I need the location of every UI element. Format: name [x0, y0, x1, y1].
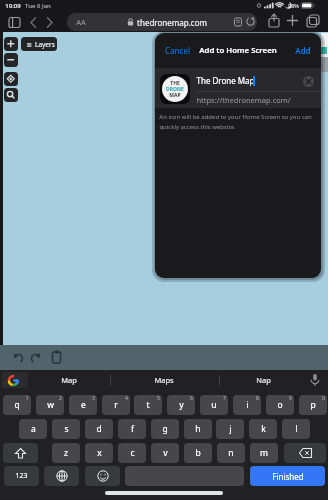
- button[interactable]: [4, 53, 18, 67]
- staticText: y: [179, 399, 184, 411]
- staticText: c: [130, 447, 135, 459]
- button[interactable]: t: [134, 395, 162, 415]
- staticText: v: [163, 447, 168, 459]
- button[interactable]: Map: [28, 372, 109, 388]
- staticText: 19:09: [5, 2, 21, 10]
- staticText: https://thedronemap.com/: [196, 95, 291, 105]
- button[interactable]: [3, 443, 38, 463]
- staticText: THE: [170, 80, 180, 87]
- staticText: 8: [256, 395, 259, 402]
- button[interactable]: h: [184, 419, 212, 439]
- staticText: Maps: [154, 375, 174, 385]
- staticText: The Drone Map: [196, 75, 255, 86]
- button[interactable]: w: [36, 395, 64, 415]
- staticText: 0: [322, 395, 325, 402]
- button[interactable]: m: [250, 443, 278, 463]
- button[interactable]: i: [233, 395, 261, 415]
- staticText: Cancel: [165, 45, 190, 56]
- button[interactable]: [308, 373, 322, 387]
- button[interactable]: k: [249, 419, 277, 439]
- button[interactable]: 123: [4, 466, 39, 486]
- staticText: 5: [157, 395, 160, 402]
- button[interactable]: o: [266, 395, 294, 415]
- button[interactable]: [44, 466, 79, 486]
- button[interactable]: u: [200, 395, 228, 415]
- button[interactable]: z: [52, 443, 80, 463]
- button[interactable]: Add: [289, 43, 311, 57]
- button[interactable]: f: [118, 419, 146, 439]
- staticText: 4: [125, 395, 128, 402]
- button[interactable]: [7, 374, 20, 387]
- staticText: 2: [59, 395, 62, 402]
- button[interactable]: Cancel: [165, 43, 200, 57]
- staticText: An icon will be added to your Home Scree…: [159, 113, 312, 121]
- button[interactable]: [4, 37, 18, 51]
- staticText: AA: [76, 17, 86, 27]
- button[interactable]: j: [216, 419, 244, 439]
- staticText: DRONE: [166, 86, 184, 93]
- staticText: g: [162, 423, 168, 435]
- staticText: Finished: [272, 471, 304, 482]
- button[interactable]: g: [151, 419, 179, 439]
- staticText: 123: [15, 471, 28, 481]
- button[interactable]: e: [69, 395, 97, 415]
- button[interactable]: x: [85, 443, 113, 463]
- button[interactable]: [4, 88, 18, 102]
- staticText: b: [195, 447, 201, 459]
- staticText: 1: [26, 395, 29, 402]
- button[interactable]: [29, 17, 38, 28]
- staticText: MAP: [169, 92, 181, 99]
- staticText: w: [47, 399, 54, 411]
- button[interactable]: a: [19, 419, 47, 439]
- staticText: n: [228, 447, 234, 459]
- button[interactable]: l: [282, 419, 310, 439]
- staticText: h: [195, 423, 201, 435]
- button[interactable]: [303, 76, 314, 87]
- button[interactable]: [284, 443, 326, 463]
- staticText: 6: [190, 395, 193, 402]
- button[interactable]: [306, 14, 320, 28]
- button[interactable]: AA: [67, 13, 257, 31]
- button[interactable]: Finished: [250, 466, 325, 486]
- staticText: u: [211, 399, 217, 411]
- staticText: Add to Home Screen: [199, 45, 277, 56]
- staticText: Add: [295, 45, 311, 56]
- button[interactable]: q: [3, 395, 31, 415]
- button[interactable]: [50, 350, 63, 365]
- button[interactable]: [287, 15, 298, 26]
- staticText: quickly access this website.: [159, 123, 236, 131]
- button[interactable]: [29, 351, 42, 364]
- button[interactable]: s: [52, 419, 80, 439]
- staticText: 3: [92, 395, 95, 402]
- staticText: q: [14, 399, 20, 411]
- button[interactable]: p: [299, 395, 327, 415]
- button[interactable]: [45, 17, 54, 28]
- button[interactable]: [12, 351, 25, 364]
- staticText: f: [131, 423, 134, 435]
- button[interactable]: Maps: [111, 372, 217, 388]
- staticText: 7: [223, 395, 226, 402]
- staticText: i: [246, 399, 249, 411]
- button[interactable]: [8, 16, 21, 29]
- staticText: t: [146, 399, 150, 411]
- button[interactable]: [85, 466, 120, 486]
- staticText: ≡ Layers: [26, 40, 55, 49]
- button[interactable]: c: [118, 443, 146, 463]
- button[interactable]: d: [85, 419, 113, 439]
- button[interactable]: v: [151, 443, 179, 463]
- staticText: 9: [289, 395, 292, 402]
- button[interactable]: y: [167, 395, 195, 415]
- button[interactable]: ≡ Layers: [21, 37, 57, 51]
- staticText: a: [31, 423, 36, 435]
- staticText: Tue 6 Jan: [25, 2, 51, 10]
- staticText: z: [64, 447, 68, 459]
- button[interactable]: [267, 13, 281, 29]
- button[interactable]: [4, 72, 18, 86]
- button[interactable]: n: [217, 443, 245, 463]
- button[interactable]: r: [102, 395, 130, 415]
- staticText: r: [114, 399, 118, 411]
- button[interactable]: b: [184, 443, 212, 463]
- button[interactable]: Nap: [220, 372, 306, 388]
- staticText: s: [64, 423, 69, 435]
